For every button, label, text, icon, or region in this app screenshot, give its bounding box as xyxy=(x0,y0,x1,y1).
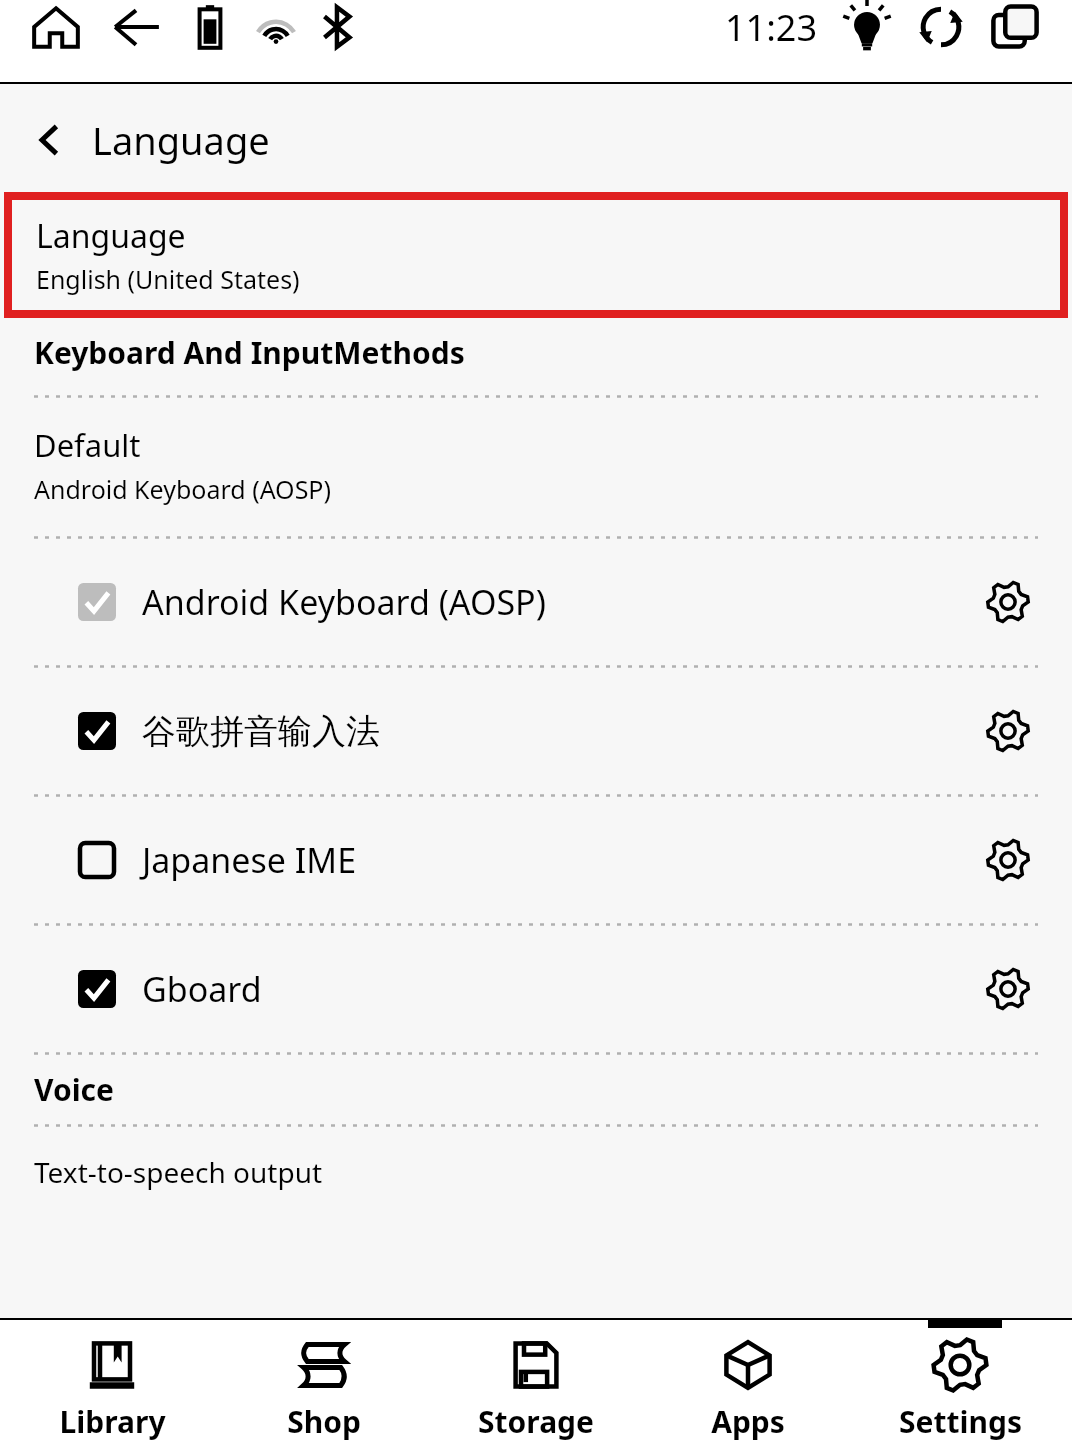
button[interactable]: Storage xyxy=(436,1331,636,1446)
button[interactable]: Text-to-speech output xyxy=(0,1149,1072,1203)
staticText: Storage xyxy=(478,1401,594,1442)
button[interactable]: Settings for Android Keyboard (AOSP) xyxy=(972,566,1044,638)
staticText: Japanese IME xyxy=(142,837,357,883)
staticText: Android Keyboard (AOSP) xyxy=(142,579,546,625)
button[interactable]: Settings for Japanese IME xyxy=(972,824,1044,896)
staticText: Settings xyxy=(899,1401,1022,1442)
button[interactable]: Brightness xyxy=(840,0,894,54)
staticText: Voice xyxy=(34,1069,1072,1110)
button[interactable]: Language xyxy=(8,196,1064,314)
staticText: Android Keyboard (AOSP) xyxy=(34,472,331,506)
staticText: Shop xyxy=(287,1401,361,1442)
staticText: Keyboard And InputMethods xyxy=(34,332,1072,373)
button[interactable]: Default xyxy=(0,398,1072,536)
button[interactable]: Refresh xyxy=(914,0,968,54)
staticText: Language xyxy=(92,114,270,166)
button[interactable]: Windows xyxy=(988,0,1042,54)
button[interactable]: Gboard xyxy=(0,926,1072,1052)
staticText: Gboard xyxy=(142,966,262,1012)
button[interactable]: Settings for 谷歌拼音输入法 xyxy=(972,695,1044,767)
staticText: 谷歌拼音输入法 xyxy=(142,710,380,753)
button[interactable]: Android Keyboard (AOSP) xyxy=(0,539,1072,665)
button[interactable]: Language xyxy=(0,84,1072,196)
staticText: Language xyxy=(36,214,186,258)
staticText: English (United States) xyxy=(36,262,300,296)
button[interactable]: Settings for Gboard xyxy=(972,953,1044,1025)
button[interactable]: Library xyxy=(12,1331,212,1446)
button[interactable]: Back xyxy=(110,1,162,53)
staticText: Default xyxy=(34,424,141,466)
button[interactable]: Apps xyxy=(648,1331,848,1446)
button[interactable]: Home xyxy=(30,1,82,53)
staticText: Apps xyxy=(711,1401,785,1442)
button[interactable]: Shop xyxy=(224,1331,424,1446)
button[interactable]: Japanese IME xyxy=(0,797,1072,923)
button[interactable]: 谷歌拼音输入法 xyxy=(0,668,1072,794)
staticText: Library xyxy=(59,1401,166,1442)
button[interactable]: Settings xyxy=(860,1331,1060,1446)
staticText: 11:23 xyxy=(725,3,818,52)
